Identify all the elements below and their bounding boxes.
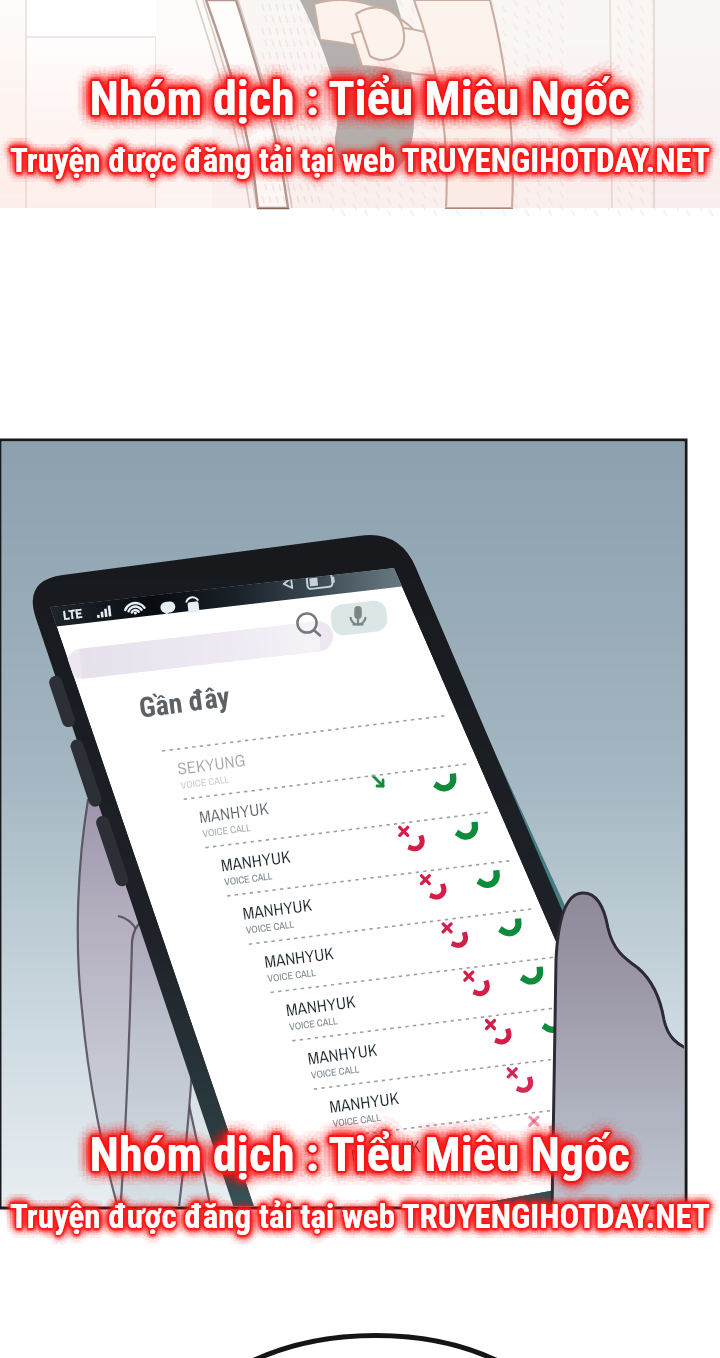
button[interactable] bbox=[0, 0, 720, 1358]
